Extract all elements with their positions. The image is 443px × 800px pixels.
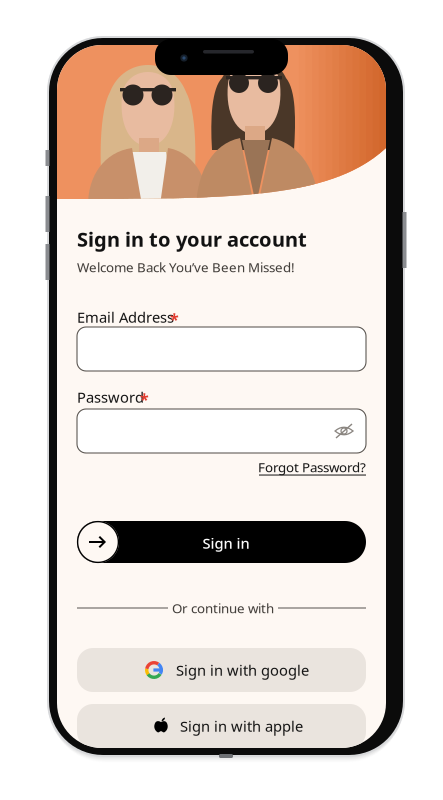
staticText: *	[170, 308, 179, 330]
staticText: Sign in with apple	[180, 716, 303, 736]
button[interactable]: Sign in with apple	[77, 704, 366, 748]
staticText: Forgot Password?	[258, 458, 366, 476]
button[interactable]: Email Address	[77, 327, 366, 371]
staticText: Email Address	[77, 307, 174, 327]
staticText: Welcome Back You’ve Been Missed!	[77, 258, 295, 276]
staticText: Sign in	[185, 527, 257, 557]
button[interactable]: Password	[77, 409, 366, 453]
staticText: Sign in	[202, 533, 249, 553]
staticText: Sign in with apple	[126, 711, 316, 741]
staticText: Sign in with google	[119, 655, 324, 685]
staticText: *	[140, 388, 149, 410]
button[interactable]: Forgot Password?	[259, 459, 366, 478]
staticText: Forgot Password?	[260, 423, 364, 514]
staticText: Sign in with google	[176, 660, 309, 680]
staticText: Or continue with	[172, 599, 274, 617]
button[interactable]: Show password	[328, 414, 360, 448]
staticText: Password	[77, 387, 144, 407]
button[interactable]: Sign in	[77, 521, 366, 563]
button[interactable]: Sign in with google	[77, 648, 366, 692]
staticText: Sign in to your account	[77, 226, 307, 252]
